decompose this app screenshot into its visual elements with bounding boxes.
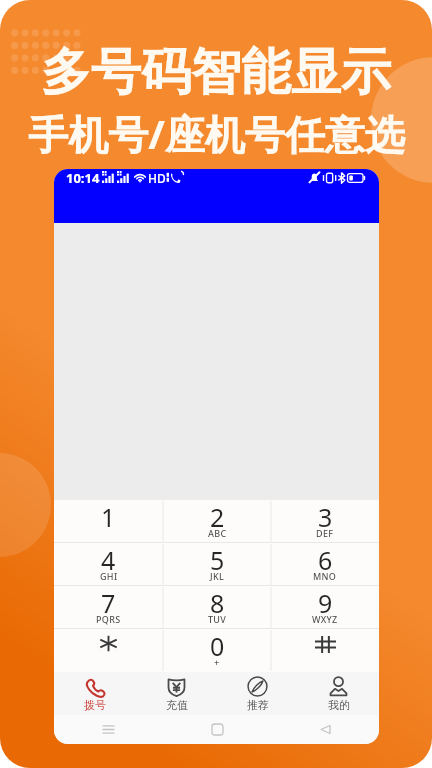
- staticText: 4: [101, 543, 116, 577]
- button[interactable]: 6: [271, 543, 379, 586]
- staticText: 10:14: [66, 169, 100, 187]
- staticText: 推荐: [247, 698, 269, 712]
- staticText: 3: [318, 500, 333, 534]
- staticText: 8: [210, 586, 225, 620]
- staticText: 9: [318, 586, 333, 620]
- staticText: 5: [210, 543, 225, 577]
- staticText: 0: [210, 629, 225, 663]
- staticText: 充值: [166, 698, 188, 712]
- staticText: +: [214, 656, 220, 668]
- staticText: JKL: [210, 570, 225, 582]
- button[interactable]: 我的: [298, 672, 379, 715]
- button[interactable]: 拨号: [54, 672, 136, 715]
- button[interactable]: 3: [271, 500, 379, 543]
- button[interactable]: Recents: [54, 715, 163, 744]
- button[interactable]: 推荐: [217, 672, 298, 715]
- button[interactable]: Home: [163, 715, 271, 744]
- button[interactable]: 0: [163, 629, 271, 672]
- button[interactable]: 7: [54, 586, 163, 629]
- staticText: PQRS: [96, 613, 121, 625]
- staticText: TUV: [208, 613, 227, 625]
- staticText: 7: [101, 586, 116, 620]
- button[interactable]: 充值: [136, 672, 217, 715]
- button[interactable]: 8: [163, 586, 271, 629]
- staticText: 多号码智能显示: [41, 41, 391, 104]
- staticText: 2: [210, 500, 225, 534]
- button[interactable]: 5: [163, 543, 271, 586]
- button[interactable]: 2: [163, 500, 271, 543]
- staticText: MNO: [313, 570, 337, 582]
- button[interactable]: 9: [271, 586, 379, 629]
- staticText: 拨号: [84, 698, 106, 712]
- button[interactable]: [54, 629, 163, 672]
- staticText: GHI: [100, 570, 118, 582]
- staticText: ABC: [208, 527, 227, 539]
- button[interactable]: Back: [271, 715, 379, 744]
- staticText: DEF: [316, 527, 334, 539]
- staticText: HD: [148, 170, 166, 186]
- staticText: WXYZ: [312, 613, 338, 625]
- staticText: 6: [318, 543, 333, 577]
- staticText: 1: [101, 500, 116, 534]
- staticText: 我的: [328, 698, 350, 712]
- button[interactable]: 1: [54, 500, 163, 543]
- button[interactable]: [271, 629, 379, 672]
- button[interactable]: 4: [54, 543, 163, 586]
- staticText: 手机号/座机号任意选: [28, 106, 405, 161]
